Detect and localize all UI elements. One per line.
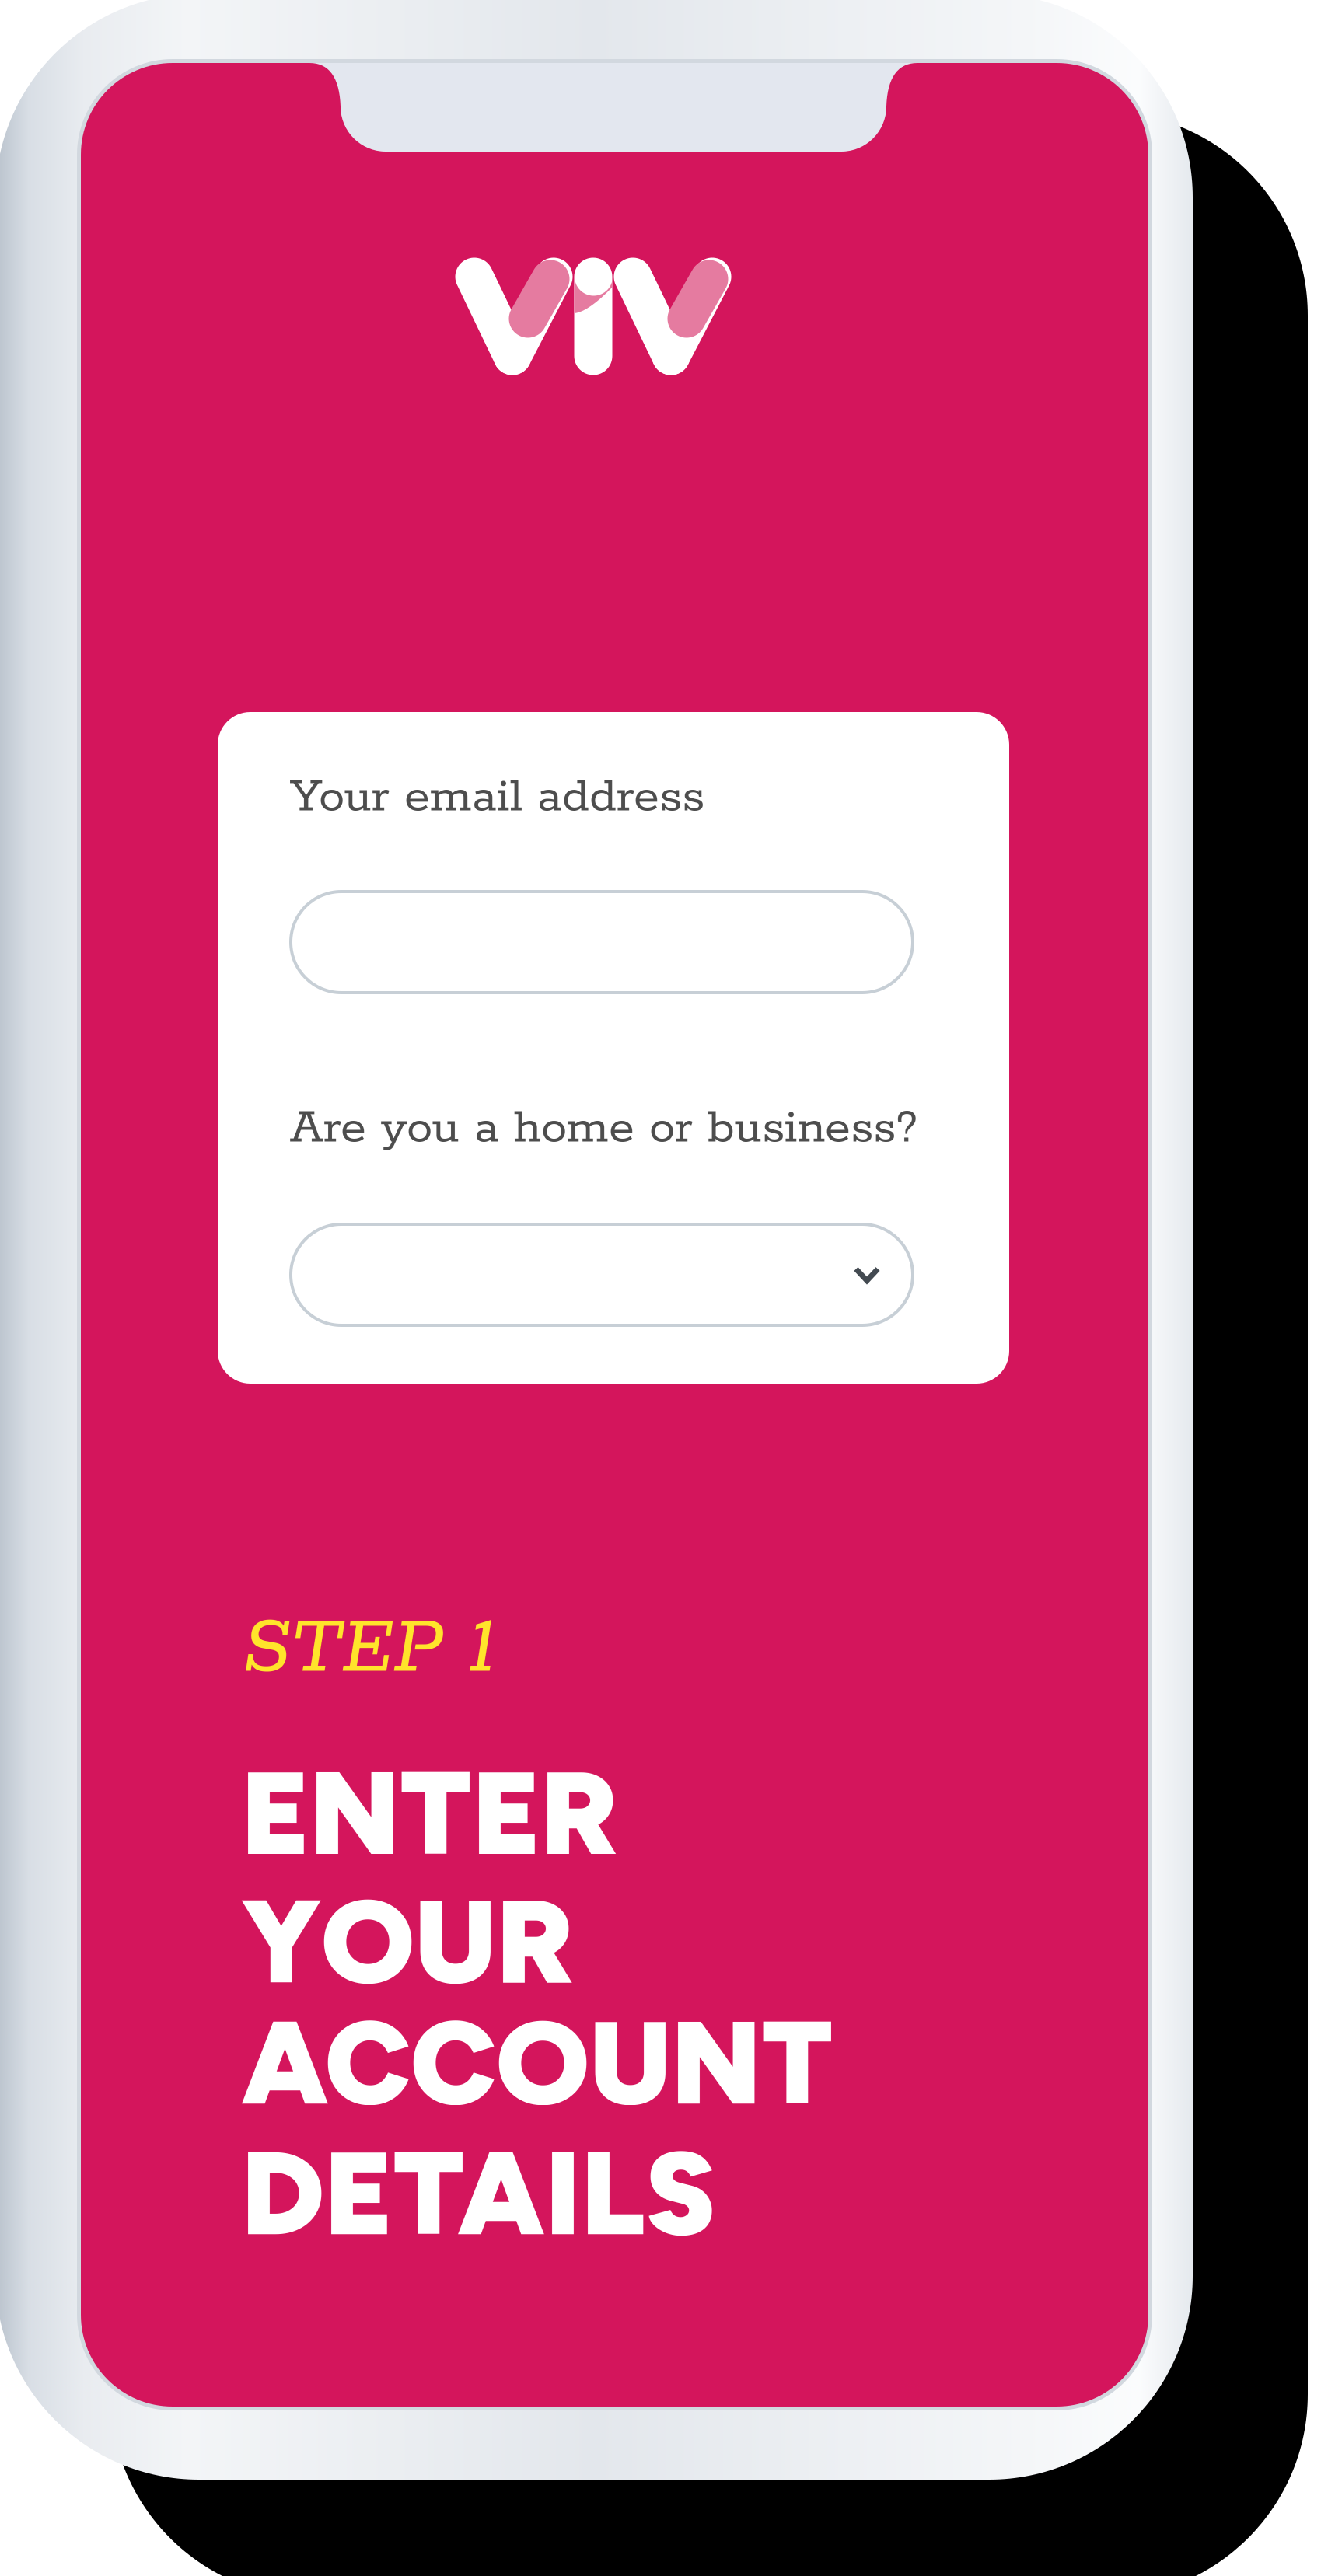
staticText: Are you a home or business? — [290, 1099, 917, 1158]
staticText: ENTER — [241, 1743, 618, 1883]
button[interactable]: Your email address — [291, 892, 913, 993]
staticText: YOUR — [241, 1871, 574, 2012]
staticText: STEP 1 — [243, 1600, 495, 1698]
staticText: ACCOUNT — [241, 1992, 833, 2133]
button[interactable]: Are you a home or business? — [291, 1224, 913, 1325]
staticText: DETAILS — [241, 2123, 715, 2263]
staticText: Your email address — [290, 768, 704, 827]
